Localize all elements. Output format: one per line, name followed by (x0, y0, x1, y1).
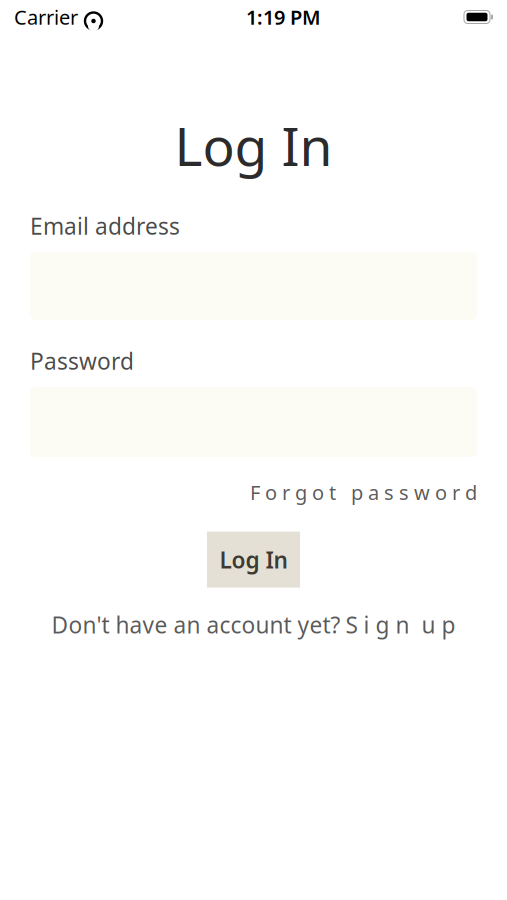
staticText: S i g n u p (345, 610, 455, 640)
staticText: Carrier (14, 4, 78, 30)
staticText: 1:19 PM (246, 4, 321, 30)
staticText: F o r g o t p a s s w o r d (250, 479, 477, 506)
button[interactable]: S i g n u p (345, 610, 455, 640)
staticText: Log In (219, 544, 287, 575)
button[interactable]: Log In (207, 532, 300, 588)
staticText: Log In (174, 110, 332, 181)
staticText: Email address (30, 211, 180, 241)
staticText: Password (30, 346, 134, 376)
staticText: Don't have an account yet? (51, 610, 340, 640)
button[interactable]: F o r g o t p a s s w o r d (250, 479, 477, 506)
